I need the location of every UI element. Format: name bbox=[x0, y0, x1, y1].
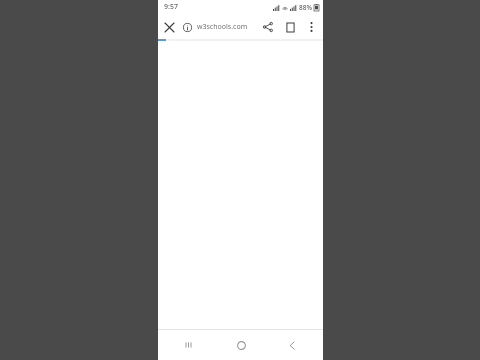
staticText: w3schools.com bbox=[197, 22, 248, 32]
button[interactable]: w3schools.com bbox=[180, 14, 257, 39]
button[interactable]: Close bbox=[158, 16, 180, 38]
button[interactable]: Recents bbox=[169, 330, 209, 360]
button[interactable]: More options bbox=[301, 17, 321, 37]
button[interactable]: Back bbox=[272, 330, 312, 360]
button[interactable]: Bookmark bbox=[279, 16, 301, 38]
staticText: 9:57 bbox=[164, 2, 178, 12]
button[interactable]: Home bbox=[221, 330, 261, 360]
button[interactable]: Share bbox=[257, 16, 279, 38]
staticText: 88% bbox=[299, 3, 312, 12]
